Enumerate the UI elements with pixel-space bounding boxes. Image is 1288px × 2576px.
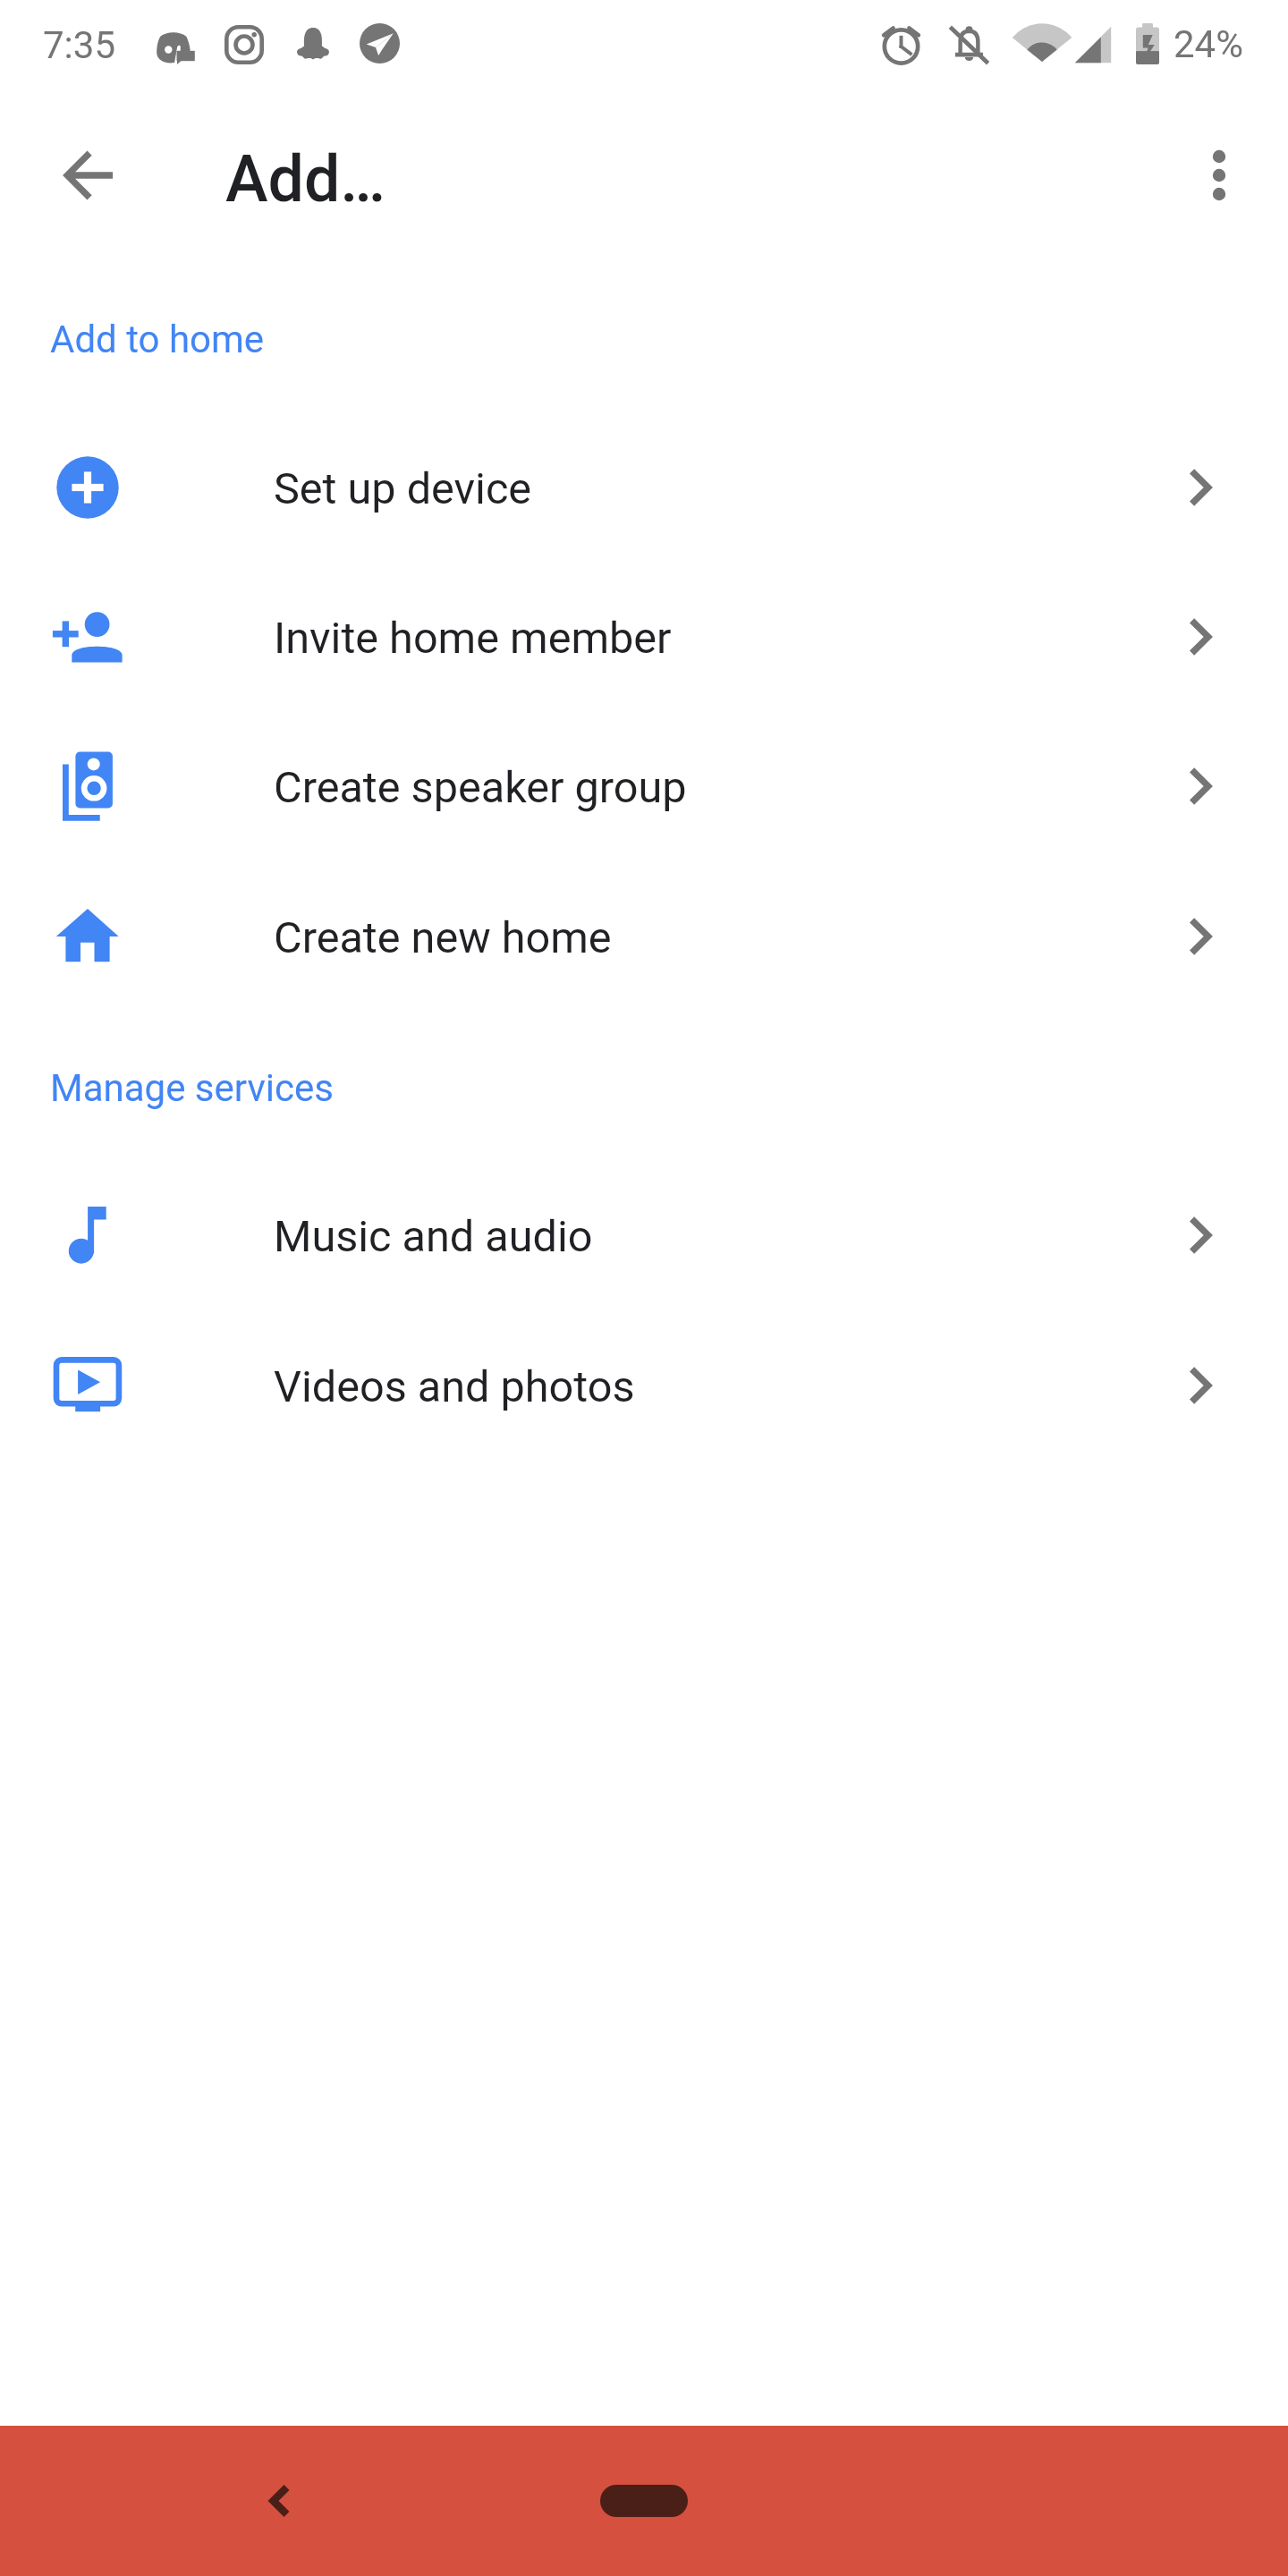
staticText: 24% (1174, 22, 1243, 66)
button[interactable]: More options (1155, 111, 1284, 240)
staticText: Manage services (50, 1066, 334, 1110)
button[interactable]: Music and audio (0, 1160, 1288, 1309)
staticText: Videos and photos (274, 1361, 635, 1412)
staticText: Invite home member (274, 613, 672, 664)
button[interactable]: Create new home (0, 861, 1288, 1011)
staticText: Set up device (274, 463, 532, 514)
button[interactable]: Invite home member (0, 562, 1288, 711)
staticText: Create new home (274, 912, 612, 963)
button[interactable]: Home (600, 2485, 688, 2517)
staticText: Music and audio (274, 1211, 593, 1262)
staticText: Add… (225, 142, 386, 217)
staticText: Add to home (50, 318, 265, 361)
button[interactable]: Videos and photos (0, 1310, 1288, 1460)
button[interactable]: Back (216, 2436, 344, 2565)
button[interactable]: Create speaker group (0, 711, 1288, 860)
staticText: Create speaker group (274, 762, 687, 813)
button[interactable]: Navigate up (23, 111, 152, 240)
button[interactable]: Set up device (0, 412, 1288, 562)
staticText: 7:35 (43, 23, 115, 67)
